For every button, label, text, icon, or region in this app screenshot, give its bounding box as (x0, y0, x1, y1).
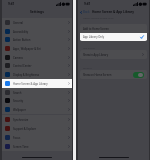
button[interactable]: Accessibility (2, 27, 72, 36)
staticText: Screen Time (13, 145, 29, 149)
staticText: Settings (30, 9, 44, 14)
button[interactable]: Display & Brightness (2, 70, 72, 79)
staticText: Wallpaper (13, 108, 26, 112)
staticText: Action Button (13, 38, 31, 42)
staticText: 9:41 (84, 2, 91, 6)
button[interactable]: App Library Only (80, 33, 147, 41)
staticText: Control Center (13, 64, 32, 68)
button[interactable]: Support & Explore (2, 124, 72, 133)
staticText: Home Screen & App Library (92, 10, 135, 14)
button[interactable]: Show on Home Screen (80, 70, 147, 79)
staticText: General (13, 21, 23, 25)
staticText: Security (13, 99, 24, 103)
staticText: Show in App Library (83, 53, 109, 57)
staticText: 9:41 (8, 2, 15, 6)
button[interactable]: Control Center (2, 61, 72, 70)
staticText: NEWLY DOWNLOADED APPS (83, 17, 114, 20)
staticText: Show on Home Screen (83, 73, 112, 77)
button[interactable]: Apps, Wallpaper & Siri (2, 44, 72, 53)
button[interactable]: Search (2, 88, 72, 97)
button[interactable]: Home Screen & App Library (2, 79, 72, 88)
staticText: Back (83, 10, 90, 14)
staticText: SEARCH (83, 67, 92, 70)
staticText: Focus (13, 136, 21, 140)
staticText: Home Screen & App Library (13, 82, 48, 86)
button[interactable]: General (2, 18, 72, 27)
staticText: Add to Home Screen (83, 27, 109, 31)
staticText: Display & Brightness (13, 73, 40, 77)
staticText: Support & Explore (13, 127, 36, 131)
button[interactable]: Wallpaper (2, 105, 72, 114)
staticText: Apps, Wallpaper & Siri (13, 47, 41, 51)
button[interactable]: Screen Time (2, 142, 72, 151)
button[interactable]: Action Button (2, 35, 72, 44)
staticText: Synchronize (13, 118, 29, 122)
button[interactable]: Show in App Library (80, 50, 147, 59)
staticText: APP ICONS (83, 47, 95, 50)
staticText: App Library Only (83, 35, 105, 39)
staticText: Accessibility (13, 30, 29, 34)
staticText: Search (13, 91, 22, 95)
button[interactable]: Focus (2, 133, 72, 142)
button[interactable]: Add to Home Screen (80, 24, 147, 33)
button[interactable]: Synchronize (2, 115, 72, 124)
staticText: Camera (13, 56, 23, 60)
button[interactable]: Back (80, 10, 90, 14)
button[interactable]: Camera (2, 53, 72, 62)
button[interactable]: Security (2, 96, 72, 105)
